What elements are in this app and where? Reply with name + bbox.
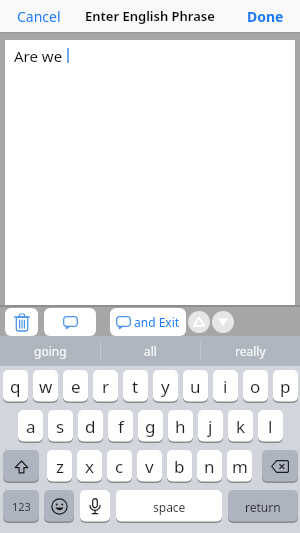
- staticText: e: [71, 375, 81, 398]
- staticText: g: [145, 415, 156, 438]
- staticText: y: [161, 375, 170, 398]
- button[interactable]: v: [137, 450, 162, 483]
- button[interactable]: g: [138, 410, 163, 443]
- staticText: q: [10, 375, 21, 398]
- button[interactable]: [44, 308, 96, 336]
- staticText: w: [39, 375, 53, 398]
- staticText: s: [56, 415, 65, 438]
- button[interactable]: n: [197, 450, 222, 483]
- staticText: Cancel: [17, 7, 61, 26]
- button[interactable]: [5, 308, 38, 336]
- staticText: v: [145, 455, 154, 478]
- staticText: i: [223, 375, 228, 398]
- staticText: j: [208, 415, 213, 438]
- staticText: Done: [247, 7, 284, 26]
- staticText: m: [232, 455, 248, 478]
- button[interactable]: z: [47, 450, 72, 483]
- button[interactable]: f: [108, 410, 133, 443]
- staticText: o: [250, 375, 261, 398]
- staticText: Enter English Phrase: [85, 7, 215, 25]
- button[interactable]: r: [93, 370, 118, 403]
- button[interactable]: [80, 490, 110, 523]
- button[interactable]: s: [48, 410, 73, 443]
- button[interactable]: return: [228, 490, 298, 523]
- staticText: return: [245, 499, 281, 515]
- button[interactable]: k: [228, 410, 253, 443]
- button[interactable]: i: [213, 370, 238, 403]
- button[interactable]: 123: [3, 490, 39, 523]
- button[interactable]: [212, 311, 234, 333]
- staticText: a: [26, 415, 36, 438]
- button[interactable]: x: [77, 450, 102, 483]
- button[interactable]: going: [0, 336, 100, 366]
- staticText: k: [236, 415, 246, 438]
- staticText: u: [190, 375, 201, 398]
- button[interactable]: space: [116, 490, 222, 523]
- staticText: Are we: [14, 46, 63, 66]
- staticText: x: [85, 455, 94, 478]
- staticText: f: [118, 415, 124, 438]
- button[interactable]: y: [153, 370, 178, 403]
- button[interactable]: [3, 450, 39, 483]
- button[interactable]: c: [107, 450, 132, 483]
- staticText: r: [102, 375, 110, 398]
- staticText: going: [34, 343, 67, 359]
- button[interactable]: a: [18, 410, 43, 443]
- staticText: h: [175, 415, 186, 438]
- staticText: n: [204, 455, 215, 478]
- button[interactable]: really: [200, 336, 300, 366]
- staticText: l: [268, 415, 273, 438]
- button[interactable]: u: [183, 370, 208, 403]
- button[interactable]: h: [168, 410, 193, 443]
- staticText: all: [144, 343, 157, 359]
- staticText: and Exit: [134, 314, 180, 330]
- button[interactable]: q: [3, 370, 28, 403]
- staticText: d: [85, 415, 96, 438]
- button[interactable]: j: [198, 410, 223, 443]
- button[interactable]: l: [258, 410, 283, 443]
- button[interactable]: [262, 450, 298, 483]
- button[interactable]: Done: [240, 3, 291, 30]
- staticText: really: [235, 343, 266, 359]
- staticText: t: [132, 375, 139, 398]
- button[interactable]: b: [167, 450, 192, 483]
- button[interactable]: o: [243, 370, 268, 403]
- staticText: c: [115, 455, 124, 478]
- button[interactable]: [44, 490, 74, 523]
- button[interactable]: t: [123, 370, 148, 403]
- button[interactable]: d: [78, 410, 103, 443]
- staticText: space: [153, 499, 186, 515]
- button[interactable]: e: [63, 370, 88, 403]
- staticText: z: [56, 455, 64, 478]
- button[interactable]: [188, 311, 210, 333]
- button[interactable]: p: [273, 370, 298, 403]
- button[interactable]: w: [33, 370, 58, 403]
- staticText: 123: [12, 499, 31, 514]
- staticText: b: [174, 455, 185, 478]
- button[interactable]: and Exit: [110, 308, 186, 336]
- button[interactable]: all: [100, 336, 200, 366]
- button[interactable]: Cancel: [10, 3, 68, 30]
- staticText: p: [280, 375, 291, 398]
- button[interactable]: m: [227, 450, 252, 483]
